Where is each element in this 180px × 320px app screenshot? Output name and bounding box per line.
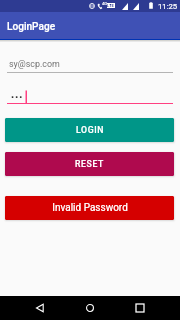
staticText: RESET — [75, 159, 104, 169]
staticText: LoginPage — [7, 21, 56, 33]
button[interactable]: LOGIN — [5, 118, 174, 142]
staticText: 11:25 — [158, 2, 178, 11]
staticText: sy@scp.com — [9, 59, 60, 69]
staticText: Invalid Password — [52, 202, 128, 214]
button[interactable]: Recents — [129, 297, 151, 319]
staticText: 4G — [102, 1, 108, 6]
button[interactable]: RESET — [5, 152, 174, 176]
button[interactable]: Back — [29, 297, 51, 319]
button[interactable]: Home — [79, 297, 101, 319]
staticText: LTE — [107, 3, 115, 8]
button[interactable]: Invalid Password — [5, 196, 174, 220]
staticText: LOGIN — [76, 125, 104, 135]
